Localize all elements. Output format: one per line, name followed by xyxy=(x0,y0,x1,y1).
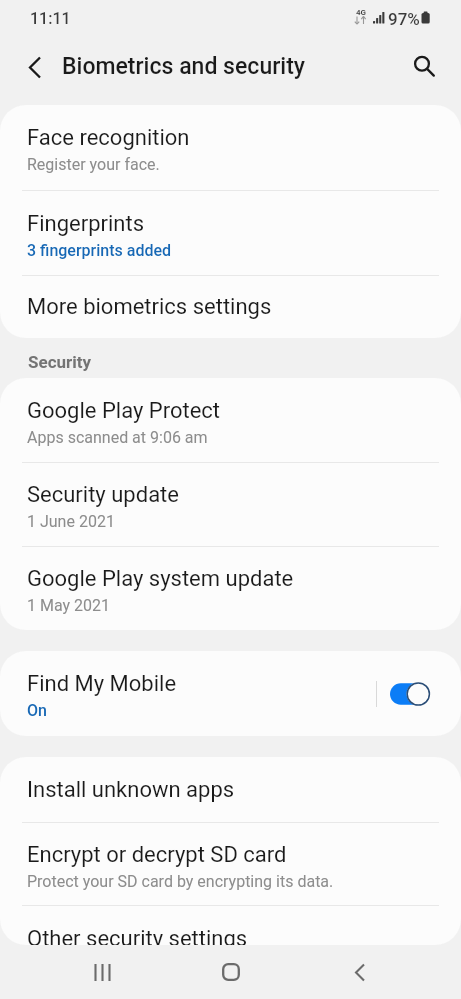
staticText: Biometrics and security xyxy=(62,53,306,80)
button[interactable]: Recent apps xyxy=(74,945,130,999)
staticText: 1 May 2021 xyxy=(27,596,111,615)
staticText: Other security settings xyxy=(27,926,248,945)
button[interactable]: Google Play Protect xyxy=(0,378,461,462)
staticText: Security xyxy=(28,352,92,372)
staticText: 11:11 xyxy=(30,9,71,28)
staticText: Face recognition xyxy=(27,125,190,151)
staticText: Protect your SD card by encrypting its d… xyxy=(27,872,334,891)
staticText: Fingerprints xyxy=(27,211,144,237)
staticText: More biometrics settings xyxy=(27,294,272,320)
button[interactable]: Encrypt or decrypt SD card xyxy=(0,823,461,905)
button[interactable]: Install unknown apps xyxy=(0,757,461,822)
button[interactable]: Search xyxy=(406,48,444,86)
staticText: 4G xyxy=(356,8,367,17)
staticText: 97% xyxy=(388,9,420,29)
button[interactable]: Security update xyxy=(0,463,461,546)
staticText: Register your face. xyxy=(27,155,160,174)
staticText: On xyxy=(27,701,47,720)
button[interactable]: Find My Mobile on xyxy=(390,681,430,707)
button[interactable]: Home xyxy=(203,945,259,999)
staticText: Find My Mobile xyxy=(27,671,177,697)
button[interactable]: Other security settings xyxy=(0,906,461,945)
button[interactable]: Back xyxy=(332,945,388,999)
staticText: Google Play system update xyxy=(27,566,294,592)
staticText: Install unknown apps xyxy=(27,777,235,803)
staticText: Google Play Protect xyxy=(27,398,221,424)
button[interactable]: More biometrics settings xyxy=(0,276,461,338)
button[interactable]: Navigate up xyxy=(16,48,54,86)
button[interactable]: Fingerprints xyxy=(0,191,461,275)
button[interactable]: Find My Mobile xyxy=(0,651,461,736)
staticText: Apps scanned at 9:06 am xyxy=(27,428,208,447)
staticText: Security update xyxy=(27,482,179,508)
staticText: 3 fingerprints added xyxy=(27,241,172,260)
button[interactable]: Face recognition xyxy=(0,105,461,190)
staticText: Encrypt or decrypt SD card xyxy=(27,842,287,868)
staticText: 1 June 2021 xyxy=(27,512,115,531)
button[interactable]: Google Play system update xyxy=(0,547,461,630)
